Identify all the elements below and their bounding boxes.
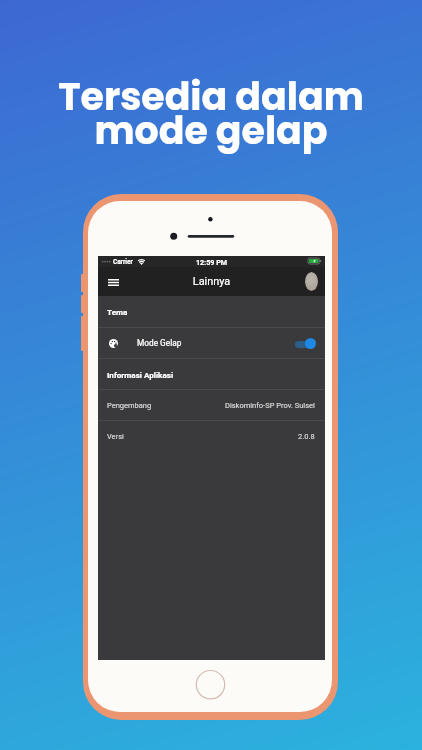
button[interactable]: Pengembang [98, 390, 325, 420]
staticText: Pengembang [107, 401, 152, 410]
button[interactable]: Mode Gelap [98, 328, 325, 358]
staticText: Lainnya [98, 275, 325, 288]
button[interactable]: Profile [300, 267, 322, 296]
button[interactable]: Menu [102, 270, 124, 294]
staticText: Informasi Aplikasi [107, 370, 174, 379]
staticText: Tersedia dalam mode gelap [0, 70, 422, 157]
staticText: 2.0.8 [298, 432, 315, 441]
staticText: 12:59 PM [98, 258, 325, 266]
button[interactable]: Versi [98, 421, 325, 452]
staticText: Mode Gelap [137, 338, 182, 348]
staticText: Diskominfo-SP Prov. Sulsel [225, 401, 315, 410]
staticText: Versi [107, 432, 124, 441]
staticText: Tema [107, 307, 128, 316]
staticText: Carrier [113, 258, 133, 266]
